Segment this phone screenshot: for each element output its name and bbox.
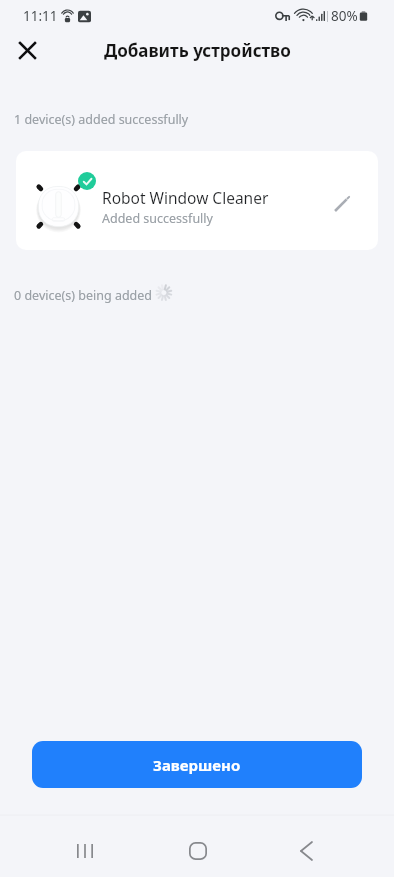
button[interactable]: Завершено: [32, 741, 362, 788]
staticText: 1 device(s) added successfully: [14, 111, 189, 128]
staticText: Robot Window Cleaner: [102, 187, 269, 208]
button[interactable]: Close: [5, 32, 50, 68]
staticText: Added successfully: [102, 210, 213, 227]
staticText: 11:11: [23, 7, 58, 25]
button[interactable]: Back: [276, 820, 336, 877]
button[interactable]: Home: [168, 820, 228, 877]
button[interactable]: Rename: [322, 185, 360, 223]
button[interactable]: Recents: [55, 820, 115, 877]
staticText: 0 device(s) being added: [14, 287, 153, 304]
button[interactable]: Robot Window Cleaner: [16, 151, 378, 250]
staticText: Завершено: [153, 755, 241, 775]
staticText: 80%: [331, 7, 358, 25]
staticText: Добавить устройство: [104, 39, 291, 62]
